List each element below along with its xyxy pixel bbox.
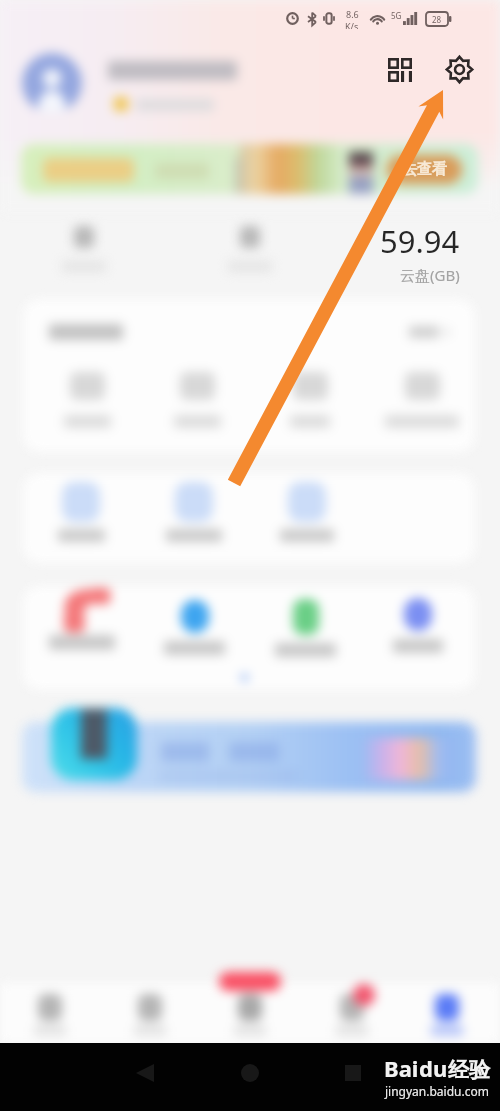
button[interactable]: Tab [205,983,295,1043]
button[interactable] [252,482,362,542]
button[interactable] [62,226,106,272]
staticText: 经验 [448,1057,490,1083]
button[interactable] [252,599,359,657]
button[interactable] [367,372,475,428]
button[interactable] [228,226,272,272]
button[interactable]: Tab [5,983,95,1043]
staticText: K/s [345,20,359,29]
button[interactable] [26,482,136,542]
button[interactable] [22,53,82,113]
staticText: 59.94 [380,220,460,262]
button[interactable] [22,722,476,792]
staticText: jingyan.baidu.com [385,1083,489,1099]
button[interactable] [32,372,142,428]
button[interactable]: Tab [307,983,397,1043]
button[interactable] [409,326,451,338]
staticText: 5G [391,10,402,21]
button[interactable] [255,372,365,428]
button[interactable]: Tab [105,983,195,1043]
staticText: du [419,1053,448,1083]
staticText: 8.6 [346,8,359,20]
button[interactable]: Settings [440,50,480,90]
button[interactable] [21,144,478,194]
staticText: 28 [432,14,442,25]
button[interactable] [141,600,248,655]
staticText: 云盘(GB) [400,265,460,285]
button[interactable] [25,586,139,650]
staticText: Bai [384,1053,419,1083]
button[interactable] [364,598,471,653]
button[interactable] [387,155,462,184]
button[interactable]: Tab [402,983,492,1043]
staticText: 去查看 [402,160,447,179]
button[interactable] [139,482,249,542]
button[interactable] [142,372,252,428]
button[interactable]: Scan QR code [382,51,420,89]
